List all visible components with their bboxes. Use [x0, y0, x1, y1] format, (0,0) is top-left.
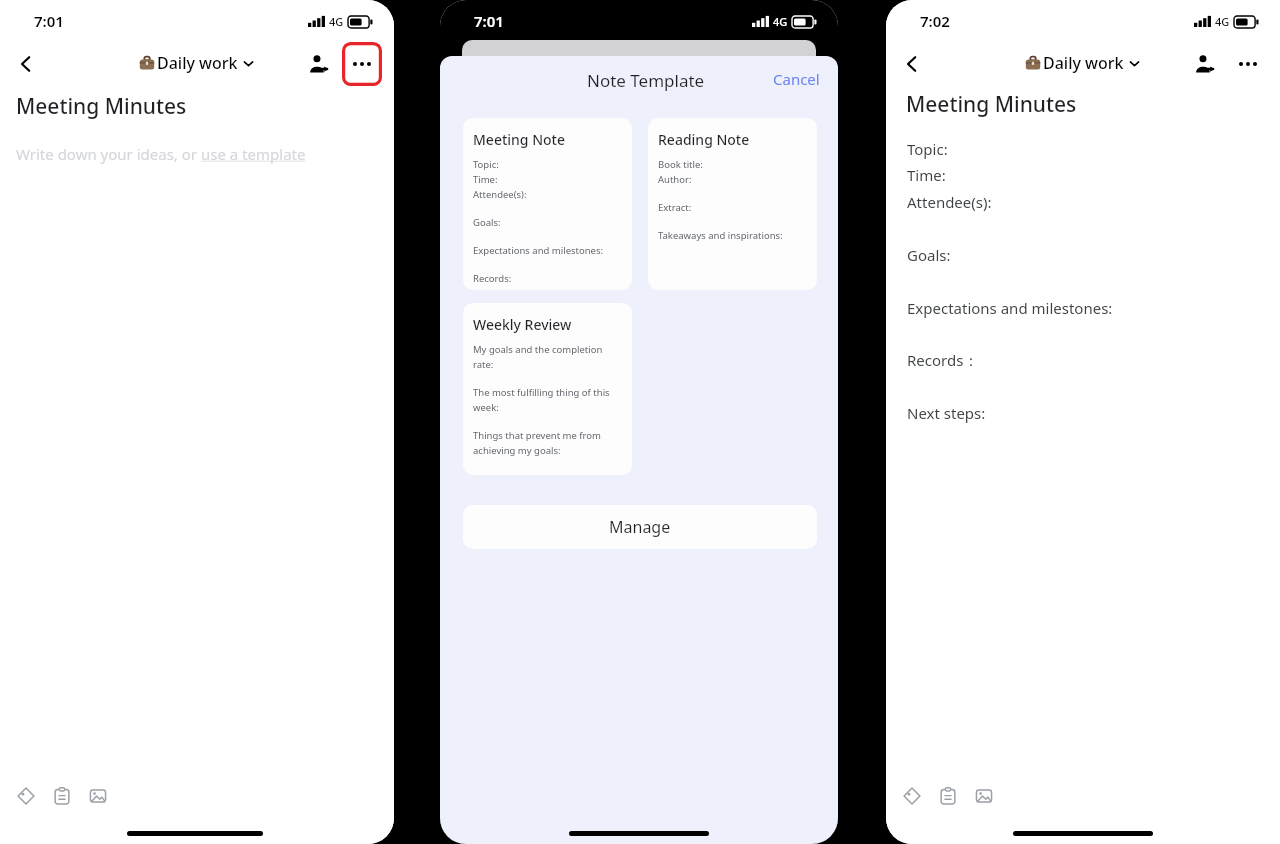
staticText: 4G: [1215, 14, 1230, 29]
button[interactable]: Share with people: [298, 44, 338, 84]
staticText: Manage: [609, 516, 671, 538]
staticText: Write down your ideas, or: [16, 144, 201, 164]
staticText: My goals and the completion: [473, 343, 603, 356]
staticText: rate:: [473, 358, 494, 371]
staticText: Extract:: [658, 201, 692, 214]
button[interactable]: Checklist: [930, 778, 966, 814]
staticText: Book title:: [658, 158, 703, 171]
staticText: Records：: [907, 350, 979, 370]
staticText: Takeaways and inspirations:: [658, 229, 783, 242]
staticText: Records:: [473, 272, 512, 285]
staticText: Attendee(s):: [473, 188, 527, 201]
staticText: Things that prevent me from: [473, 429, 601, 442]
staticText: week:: [473, 401, 499, 414]
button[interactable]: More options: [342, 42, 382, 86]
staticText: Next steps:: [907, 403, 986, 423]
staticText: Time:: [473, 173, 498, 186]
staticText: Goals:: [473, 216, 501, 229]
button[interactable]: Weekly Review: [463, 303, 632, 475]
button[interactable]: Meeting Note: [463, 118, 632, 290]
button[interactable]: Tags: [8, 778, 44, 814]
staticText: Topic:: [473, 158, 499, 171]
staticText: Expectations and milestones:: [473, 244, 604, 257]
staticText: 7:01: [474, 11, 504, 31]
button[interactable]: Back: [6, 44, 46, 84]
button[interactable]: Daily work: [139, 52, 254, 74]
staticText: Author:: [658, 173, 692, 186]
staticText: 7:02: [920, 11, 950, 31]
button[interactable]: Checklist: [44, 778, 80, 814]
button[interactable]: Daily work: [1025, 52, 1140, 74]
staticText: Goals:: [907, 245, 951, 265]
staticText: 4G: [329, 14, 344, 29]
staticText: 4G: [773, 14, 788, 29]
staticText: 7:01: [34, 11, 64, 31]
button[interactable]: Tags: [894, 778, 930, 814]
staticText: Time:: [907, 165, 946, 185]
staticText: Reading Note: [658, 130, 750, 149]
button[interactable]: Back: [892, 44, 932, 84]
staticText: achieving my goals:: [473, 444, 561, 457]
staticText: Note Template: [587, 69, 705, 92]
button[interactable]: use a template: [201, 144, 306, 164]
staticText: Topic:: [907, 139, 948, 159]
staticText: Meeting Note: [473, 130, 565, 149]
staticText: Meeting Minutes: [906, 90, 1077, 119]
button[interactable]: Manage: [463, 505, 817, 549]
staticText: Weekly Review: [473, 315, 572, 334]
button[interactable]: Insert image: [966, 778, 1002, 814]
button[interactable]: Share with people: [1184, 44, 1224, 84]
button[interactable]: Cancel: [767, 64, 826, 94]
staticText: Expectations and milestones:: [907, 298, 1113, 318]
staticText: Daily work: [1043, 52, 1124, 74]
staticText: Daily work: [157, 52, 238, 74]
button[interactable]: Insert image: [80, 778, 116, 814]
staticText: Attendee(s):: [907, 192, 992, 212]
button[interactable]: More options: [1228, 42, 1268, 86]
staticText: Cancel: [773, 69, 820, 89]
staticText: The most fulfilling thing of this: [473, 386, 610, 399]
staticText: Meeting Minutes: [16, 92, 187, 121]
button[interactable]: Reading Note: [648, 118, 817, 290]
